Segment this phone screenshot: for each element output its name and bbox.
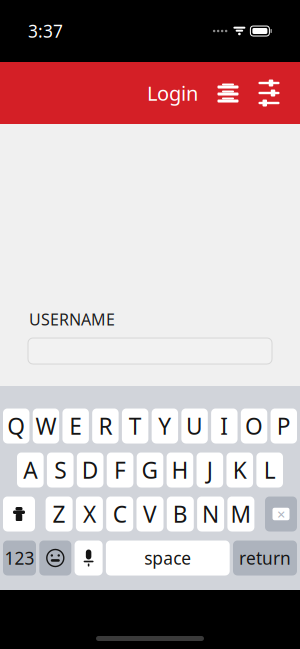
staticText: X [83,499,96,529]
button[interactable]: G [137,452,163,487]
staticText: Z [53,499,66,529]
staticText: D [82,455,99,485]
button[interactable]: Login [139,71,206,115]
staticText: R [98,411,112,441]
staticText: F [114,455,126,485]
button[interactable]: R [92,408,119,443]
staticText: T [129,411,142,441]
staticText: Y [158,411,171,441]
button[interactable]: L [256,452,283,487]
staticText: P [277,411,291,441]
button[interactable]: J [196,452,223,487]
staticText: Login [147,80,198,106]
button[interactable]: H [167,452,193,487]
staticText: space [144,546,191,569]
staticText: USERNAME [29,309,115,330]
staticText: W [35,411,56,441]
button[interactable]: F [107,452,133,487]
staticText: K [233,455,247,485]
staticText: return [239,546,291,569]
staticText: E [69,411,82,441]
button[interactable]: W [33,408,59,443]
staticText: M [230,499,251,529]
staticText: 123 [4,546,34,569]
button[interactable]: N [197,496,224,531]
button[interactable]: Delete [265,496,297,531]
staticText: 3:37 [28,19,63,42]
staticText: N [202,499,219,529]
staticText: H [171,455,188,485]
button[interactable]: space [106,540,230,575]
button[interactable]: E [62,408,89,443]
button[interactable]: Dictation [75,540,103,575]
button[interactable]: Q [3,408,29,443]
button[interactable]: D [77,452,103,487]
button[interactable]: I [211,408,237,443]
staticText: × [277,504,285,524]
staticText: L [264,455,276,485]
button[interactable]: X [76,496,103,531]
button[interactable]: Filter [250,71,288,115]
staticText: O [245,411,263,441]
button[interactable]: 123 [3,540,36,575]
staticText: V [143,499,157,529]
button[interactable]: O [241,408,267,443]
staticText: U [186,411,203,441]
button[interactable]: M [227,496,254,531]
button[interactable]: K [226,452,253,487]
button[interactable]: S [47,452,73,487]
button[interactable]: Layers [206,71,250,115]
staticText: C [113,499,127,529]
button[interactable]: P [271,408,297,443]
button[interactable]: return [233,540,297,575]
staticText: G [141,455,158,485]
staticText: Q [7,411,25,441]
button[interactable]: B [167,496,194,531]
staticText: J [207,455,213,485]
staticText: S [54,455,66,485]
button[interactable]: Z [46,496,73,531]
button[interactable]: Emoji [39,540,71,575]
button[interactable]: C [106,496,133,531]
button[interactable]: V [136,496,163,531]
button[interactable]: Shift [3,496,35,531]
button[interactable]: Y [152,408,178,443]
staticText: B [173,499,188,529]
button[interactable]: U [181,408,208,443]
button[interactable]: A [17,452,44,487]
staticText: I [220,411,228,441]
staticText: A [23,455,37,485]
button[interactable]: T [122,408,148,443]
